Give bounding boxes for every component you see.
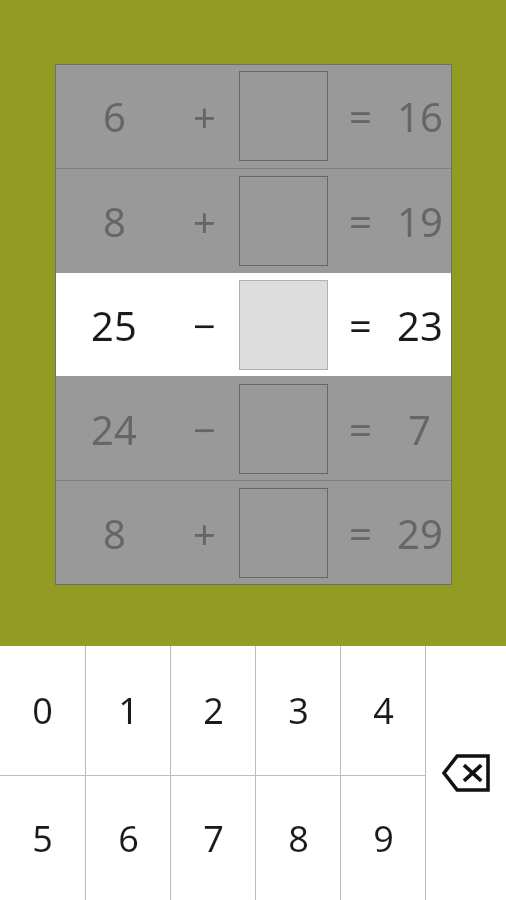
button[interactable]: 8 [256,776,340,900]
staticText: = [349,298,372,352]
button[interactable]: 5 [0,776,85,900]
staticText: + [193,89,216,143]
staticText: 6 [103,89,126,143]
button[interactable]: 1 [86,646,170,775]
button[interactable]: 25 [55,273,452,376]
staticText: 5 [32,814,53,863]
button[interactable]: 8 [55,169,452,272]
staticText: 9 [373,814,394,863]
staticText: 8 [288,814,309,863]
staticText: 4 [373,686,394,735]
staticText: 2 [203,686,224,735]
button[interactable]: 9 [341,776,425,900]
staticText: 24 [91,402,137,456]
staticText: + [193,506,216,560]
staticText: 29 [397,506,443,560]
staticText: + [193,194,216,248]
staticText: 7 [408,402,431,456]
staticText: 1 [118,686,139,735]
button[interactable]: 8 [55,481,452,584]
button[interactable]: 2 [171,646,255,775]
staticText: − [193,402,216,456]
button[interactable]: 6 [55,64,452,168]
button[interactable]: 3 [256,646,340,775]
button[interactable]: 4 [341,646,425,775]
staticText: 7 [203,814,224,863]
staticText: 8 [103,506,126,560]
staticText: 3 [288,686,309,735]
staticText: 19 [397,194,443,248]
staticText: 6 [118,814,139,863]
staticText: 25 [91,298,137,352]
staticText: 16 [397,89,443,143]
staticText: 0 [32,686,53,735]
staticText: = [349,194,372,248]
button[interactable]: 0 [0,646,85,775]
staticText: = [349,402,372,456]
button[interactable]: Backspace [426,646,506,900]
staticText: − [193,298,216,352]
staticText: = [349,506,372,560]
staticText: 8 [103,194,126,248]
button[interactable]: 7 [171,776,255,900]
button[interactable]: 24 [55,377,452,480]
staticText: 23 [397,298,443,352]
button[interactable]: 6 [86,776,170,900]
staticText: = [349,89,372,143]
